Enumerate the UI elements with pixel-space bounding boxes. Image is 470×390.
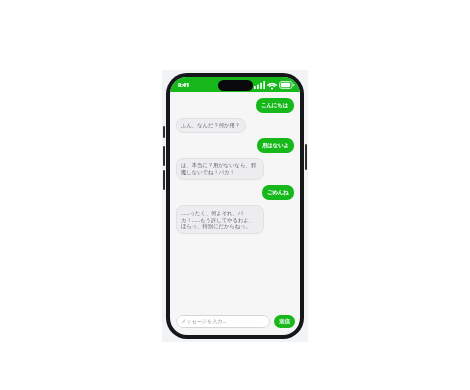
staticText: 送信 (279, 318, 290, 325)
staticText: ……ったく、何よそれ、バカ！……もう許してやるわよ、ほらっ、特別にだからねっ。 (181, 209, 259, 230)
button[interactable]: 送信 (274, 315, 295, 328)
button[interactable]: ……ったく、何よそれ、バカ！……もう許してやるわよ、ほらっ、特別にだからねっ。 (176, 205, 264, 234)
button[interactable]: メッセージを入力... (176, 315, 270, 328)
button[interactable]: ごめんね (262, 185, 294, 200)
button[interactable]: ふん、なんだ？何か用？ (176, 118, 246, 133)
button[interactable]: こんにちは (256, 98, 294, 113)
staticText: 9:41 (178, 81, 190, 89)
staticText: は、本当に？用がないなら、邪魔しないでね！バカ！ (181, 162, 259, 176)
staticText: 用はないよ (262, 142, 289, 149)
button[interactable]: は、本当に？用がないなら、邪魔しないでね！バカ！ (176, 158, 264, 180)
staticText: ふん、なんだ？何か用？ (181, 122, 241, 129)
staticText: ごめんね (267, 189, 289, 196)
staticText: こんにちは (261, 102, 289, 109)
button[interactable]: 用はないよ (257, 138, 294, 153)
staticText: メッセージを入力... (181, 318, 227, 325)
